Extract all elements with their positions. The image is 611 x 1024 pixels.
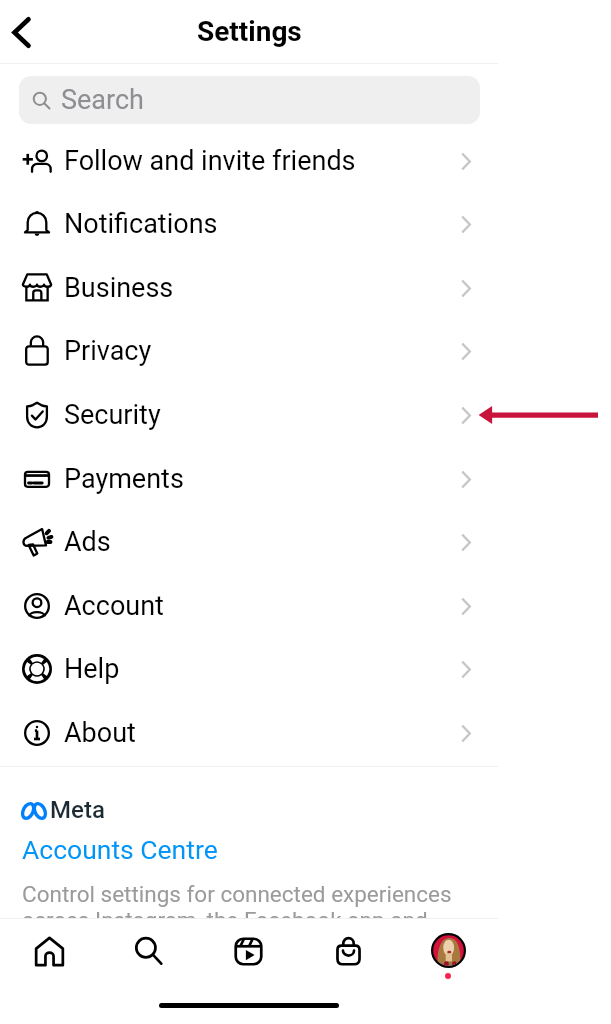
button[interactable]: Home <box>0 919 99 983</box>
staticText: Ads <box>64 526 111 558</box>
button[interactable]: Business <box>0 256 498 320</box>
button[interactable]: Search <box>19 76 480 124</box>
staticText: Follow and invite friends <box>64 145 356 177</box>
button[interactable]: Search <box>99 919 198 983</box>
staticText: Notifications <box>64 208 218 240</box>
button[interactable]: Security <box>0 383 498 447</box>
button[interactable]: Back <box>0 4 48 60</box>
button[interactable]: Reels <box>198 919 298 983</box>
button[interactable]: Ads <box>0 510 498 574</box>
staticText: Search <box>61 84 144 116</box>
button[interactable]: Profile <box>398 919 498 983</box>
button[interactable]: Notifications <box>0 192 498 256</box>
button[interactable]: Payments <box>0 447 498 511</box>
staticText: Account <box>64 590 164 622</box>
staticText: Meta <box>50 796 105 824</box>
staticText: About <box>64 717 136 749</box>
button[interactable]: Account <box>0 574 498 638</box>
staticText: Help <box>64 653 120 685</box>
staticText: Settings <box>197 15 302 48</box>
button[interactable]: Help <box>0 637 498 701</box>
button[interactable]: Follow and invite friends <box>0 129 498 193</box>
button[interactable]: Accounts Centre <box>22 834 218 865</box>
staticText: Privacy <box>64 335 152 367</box>
staticText: Payments <box>64 463 184 495</box>
button[interactable]: Shop <box>298 919 398 983</box>
staticText: Security <box>64 399 161 431</box>
staticText: Control settings for connected experienc… <box>22 881 458 988</box>
staticText: Business <box>64 272 174 304</box>
button[interactable]: About <box>0 701 498 765</box>
button[interactable]: Privacy <box>0 319 498 383</box>
